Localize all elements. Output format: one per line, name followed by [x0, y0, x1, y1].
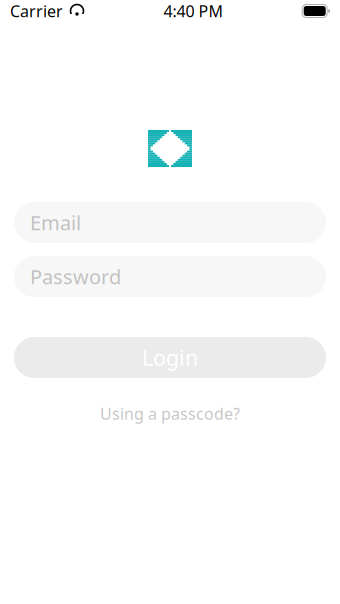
button[interactable]: Using a passcode?: [88, 398, 252, 429]
staticText: Login: [142, 343, 198, 372]
staticText: Email: [30, 209, 81, 236]
staticText: Using a passcode?: [100, 403, 240, 424]
staticText: Carrier: [10, 0, 63, 22]
button[interactable]: Login: [14, 337, 326, 378]
button[interactable]: Password: [14, 256, 326, 297]
button[interactable]: Email: [14, 202, 326, 243]
staticText: 4:40 PM: [164, 0, 224, 22]
staticText: Password: [30, 263, 121, 290]
